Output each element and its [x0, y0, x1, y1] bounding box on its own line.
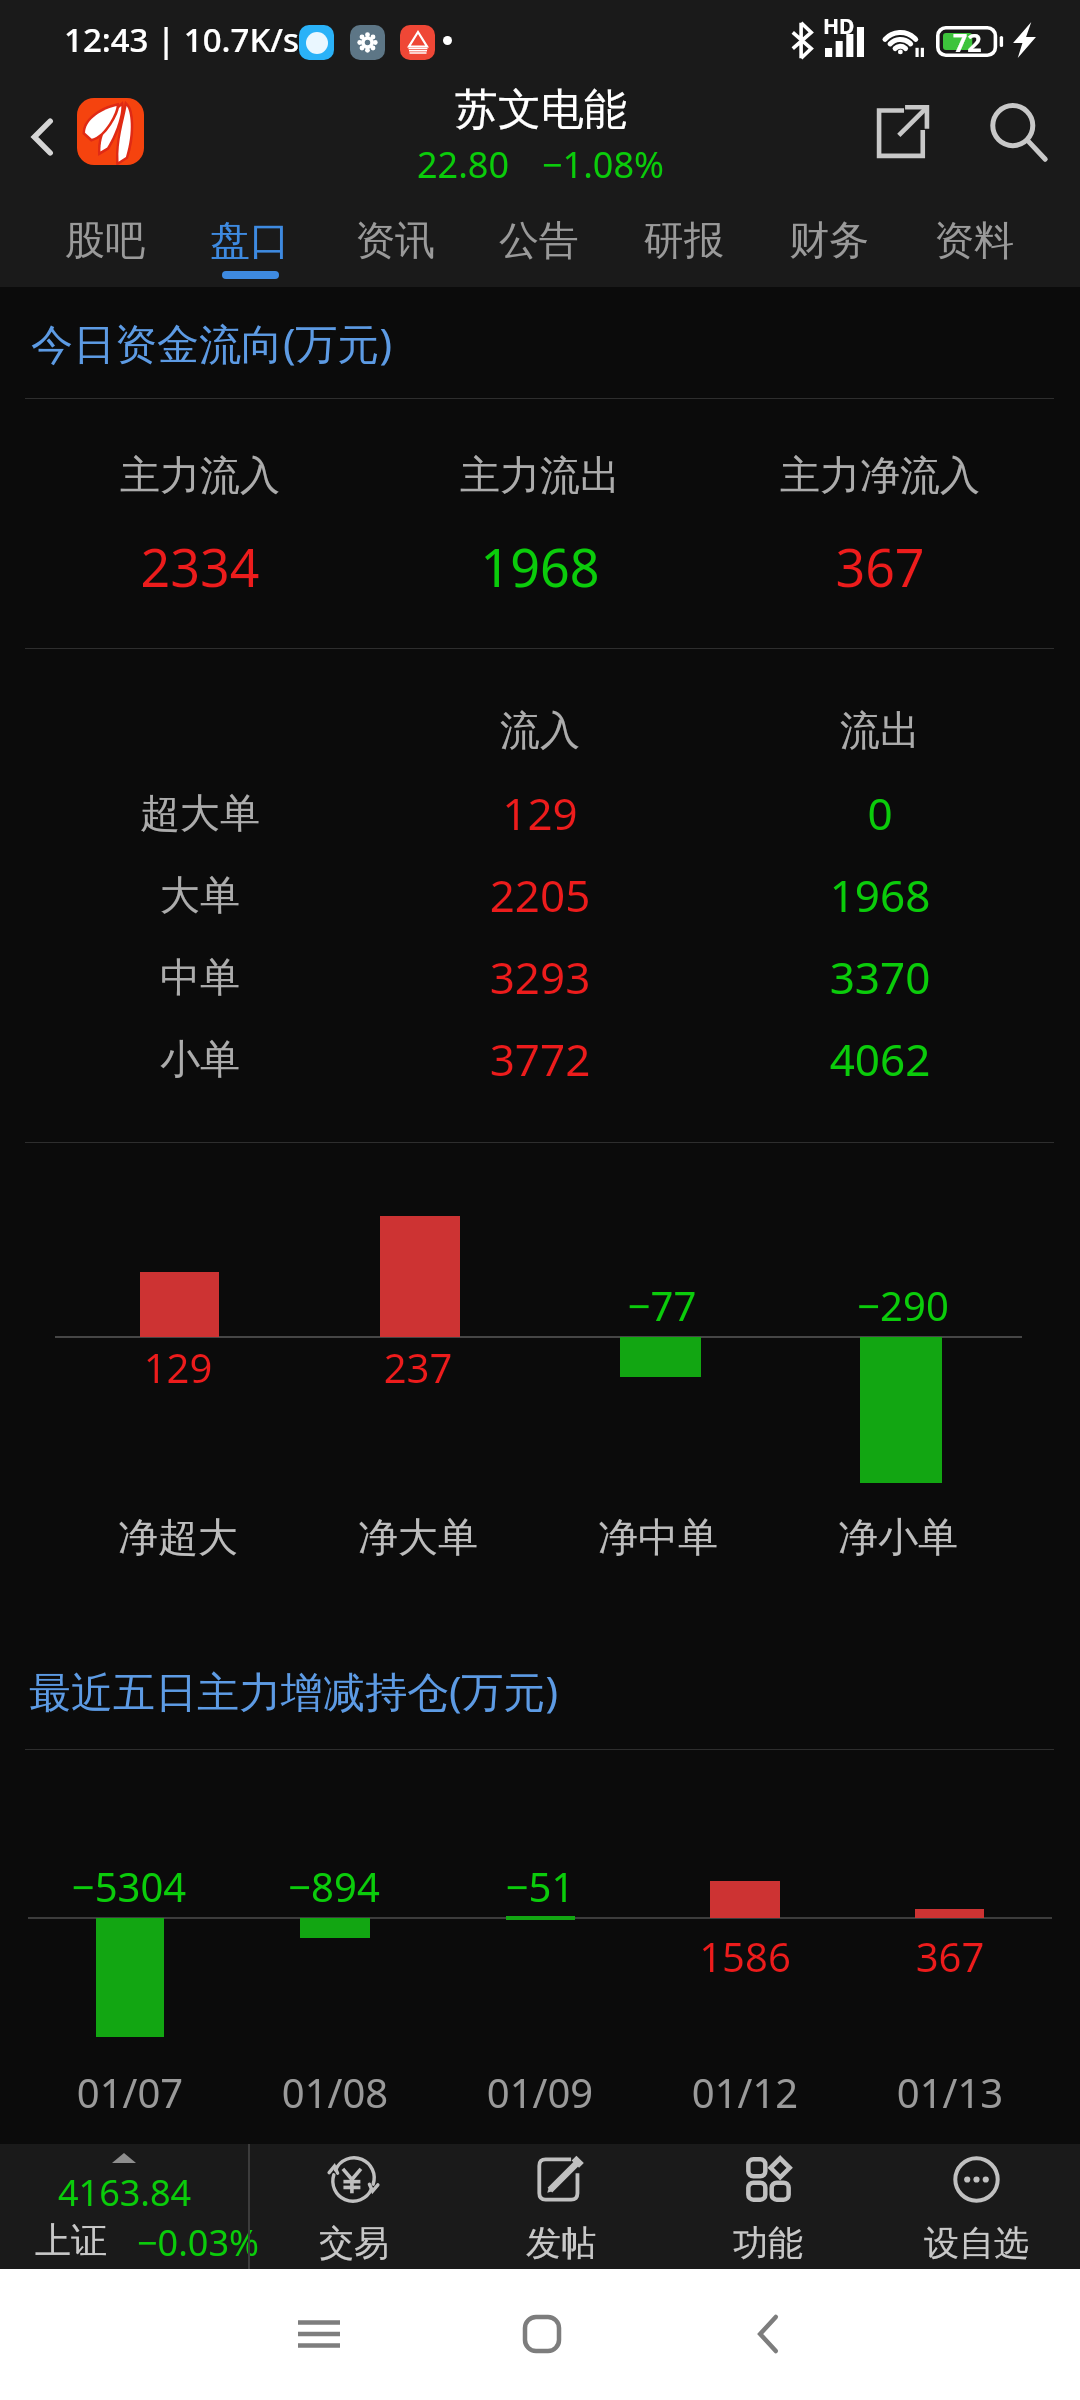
staticText: 129: [340, 783, 740, 843]
staticText: 交易: [319, 2221, 389, 2265]
button[interactable]: East Money logo: [77, 98, 144, 165]
staticText: 主力流入: [0, 450, 400, 500]
staticText: 净大单: [218, 1512, 618, 1562]
button[interactable]: Back: [0, 94, 86, 180]
staticText: HD: [823, 12, 855, 41]
staticText: 3772: [340, 1029, 740, 1089]
staticText: −77: [462, 1278, 862, 1332]
staticText: 2334: [0, 531, 400, 602]
staticText: 股吧: [65, 215, 145, 265]
staticText: 超大单: [0, 788, 400, 838]
staticText: 4062: [680, 1029, 1080, 1089]
button[interactable]: 盘口: [178, 193, 322, 287]
staticText: 1586: [545, 1929, 945, 1983]
staticText: 上证: [35, 2218, 107, 2263]
staticText: 财务: [789, 215, 869, 265]
button[interactable]: Share: [858, 86, 948, 176]
staticText: 苏文电能: [455, 83, 627, 137]
staticText: 研报: [644, 215, 724, 265]
staticText: 01/13: [750, 2065, 1080, 2119]
staticText: 129: [0, 1340, 378, 1394]
button[interactable]: Search: [972, 86, 1064, 178]
staticText: 12:43 | 10.7K/s: [64, 17, 300, 62]
staticText: 主力流出: [340, 450, 740, 500]
staticText: 净超大: [0, 1512, 378, 1562]
button[interactable]: 设自选: [872, 2144, 1080, 2269]
staticText: −894: [134, 1859, 534, 1913]
staticText: 01/12: [545, 2065, 945, 2119]
staticText: 发帖: [526, 2221, 596, 2265]
button[interactable]: 4163.84: [0, 2144, 248, 2269]
staticText: 237: [218, 1340, 618, 1394]
staticText: 3293: [340, 947, 740, 1007]
staticText: 01/08: [135, 2065, 535, 2119]
staticText: 盘口: [210, 215, 290, 265]
staticText: −0.03%: [137, 2218, 259, 2267]
staticText: 主力净流入: [680, 450, 1080, 500]
staticText: 公告: [499, 215, 579, 265]
staticText: 1968: [340, 531, 740, 602]
button[interactable]: Home: [517, 2309, 567, 2359]
staticText: 功能: [733, 2221, 803, 2265]
staticText: 设自选: [924, 2221, 1029, 2265]
staticText: 资料: [934, 215, 1014, 265]
button[interactable]: 研报: [612, 193, 756, 287]
button[interactable]: 交易: [250, 2144, 457, 2269]
staticText: 22.80: [417, 140, 510, 189]
button[interactable]: Recents: [294, 2309, 344, 2359]
staticText: 大单: [0, 870, 400, 920]
button[interactable]: 发帖: [457, 2144, 664, 2269]
staticText: 0: [680, 783, 1080, 843]
staticText: 流出: [680, 705, 1080, 755]
staticText: 净中单: [458, 1512, 858, 1562]
staticText: 2205: [340, 865, 740, 925]
staticText: −51: [340, 1859, 740, 1913]
staticText: 资讯: [355, 215, 435, 265]
staticText: −5304: [0, 1859, 329, 1913]
button[interactable]: 公告: [467, 193, 611, 287]
button[interactable]: 财务: [757, 193, 901, 287]
button[interactable]: 资讯: [323, 193, 467, 287]
staticText: 4163.84: [58, 2168, 192, 2217]
staticText: 1968: [680, 865, 1080, 925]
staticText: 367: [750, 1929, 1080, 1983]
staticText: 小单: [0, 1034, 400, 1084]
staticText: 01/09: [340, 2065, 740, 2119]
staticText: 3370: [680, 947, 1080, 1007]
staticText: 净小单: [698, 1512, 1080, 1562]
staticText: 最近五日主力增减持仓(万元): [29, 1662, 559, 1719]
button[interactable]: 功能: [664, 2144, 872, 2269]
staticText: 中单: [0, 952, 400, 1002]
staticText: 01/07: [0, 2065, 330, 2119]
staticText: 今日资金流向(万元): [31, 314, 393, 371]
button[interactable]: Back: [744, 2309, 794, 2359]
staticText: −1.08%: [542, 140, 664, 189]
staticText: 流入: [340, 705, 740, 755]
staticText: 72: [953, 25, 982, 56]
button[interactable]: 资料: [902, 193, 1046, 287]
staticText: −290: [703, 1278, 1080, 1332]
button[interactable]: 股吧: [33, 193, 177, 287]
staticText: 367: [680, 531, 1080, 602]
